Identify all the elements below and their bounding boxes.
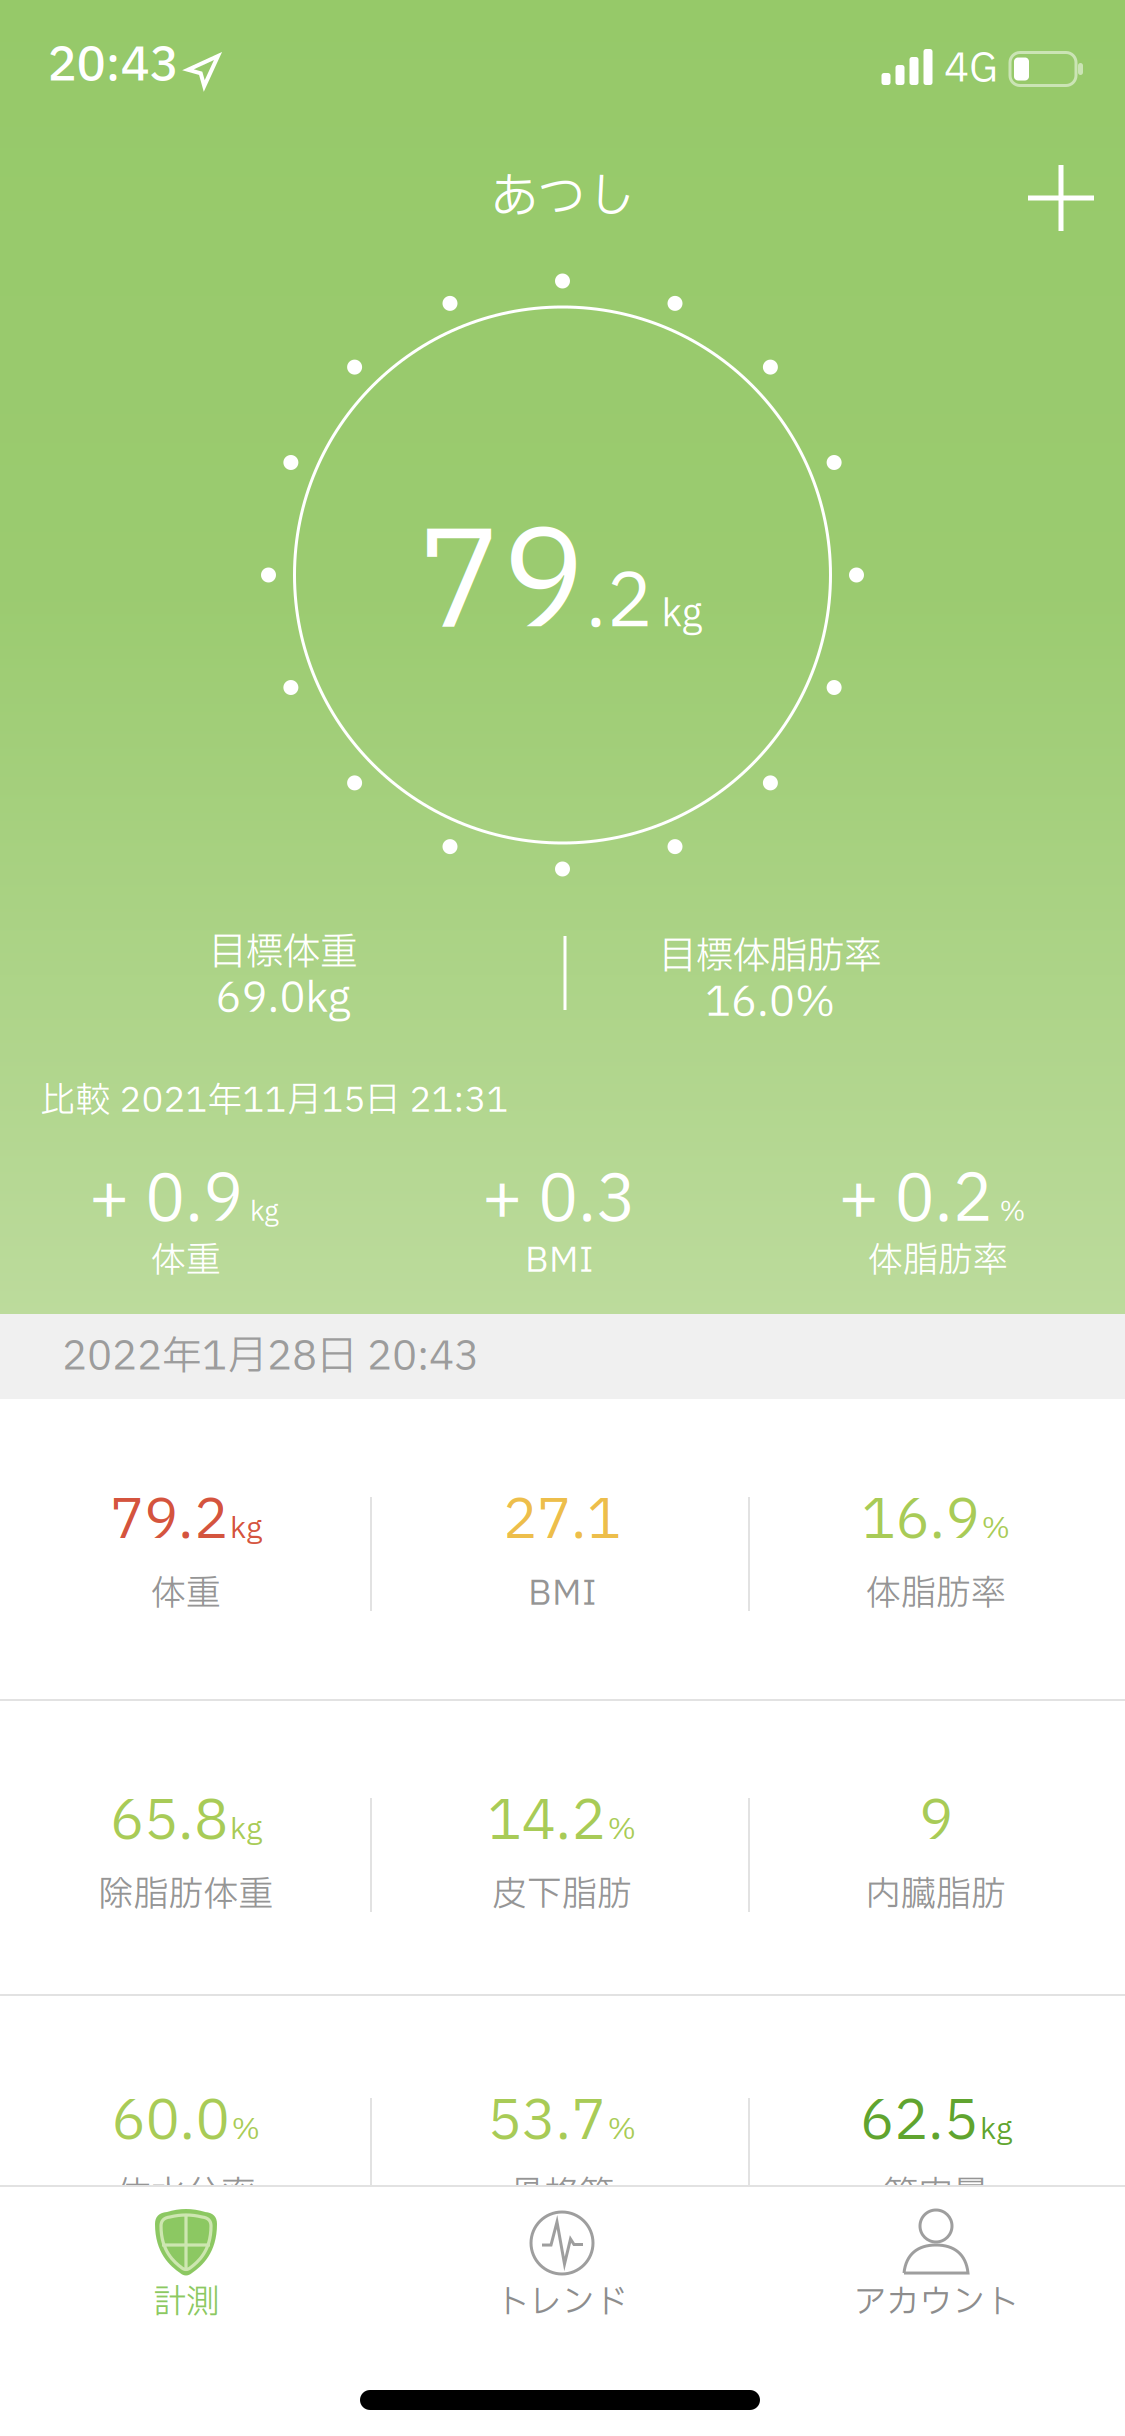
staticText: 皮下脂肪 — [492, 1869, 632, 1921]
staticText: + 0.9 — [89, 1153, 243, 1249]
staticText: 53.7 — [487, 2081, 605, 2163]
staticText: + 0.3 — [482, 1153, 636, 1249]
staticText: 内臓脂肪 — [866, 1869, 1006, 1921]
staticText: .2 — [585, 549, 652, 659]
staticText: % — [981, 1507, 1010, 1551]
button[interactable]: トレンド — [422, 2195, 702, 2335]
staticText: BMI — [525, 1235, 593, 1287]
button[interactable]: アカウント — [786, 2195, 1086, 2335]
staticText: 16.0% — [705, 972, 835, 1034]
staticText: 骨格筋 — [509, 2169, 614, 2221]
staticText: 79 — [417, 485, 585, 685]
staticText: % — [992, 1193, 1025, 1233]
staticText: 2022年1月28日 20:43 — [62, 1327, 479, 1387]
staticText: kg — [230, 1507, 262, 1551]
staticText: 79.2 — [110, 1480, 228, 1562]
staticText: アカウント — [853, 2278, 1018, 2328]
staticText: 20:43 — [47, 31, 178, 101]
staticText: % — [231, 2108, 260, 2152]
staticText: + 0.2 — [838, 1153, 992, 1249]
staticText: 体重 — [151, 1235, 221, 1287]
staticText: % — [607, 1808, 636, 1852]
staticText: 比較 2021年11月15日 21:31 — [40, 1075, 508, 1127]
button[interactable]: 計測 — [93, 2195, 279, 2335]
staticText: 体水分率 — [116, 2169, 256, 2221]
staticText: kg — [243, 1193, 279, 1233]
staticText: あつし — [490, 162, 634, 234]
staticText: BMI — [528, 1568, 596, 1620]
staticText: 除脂肪体重 — [98, 1869, 273, 1921]
staticText: 体脂肪率 — [866, 1568, 1006, 1620]
staticText: 4G — [944, 39, 998, 99]
staticText: 65.8 — [110, 1781, 228, 1863]
staticText: 計測 — [153, 2278, 219, 2328]
staticText: 14.2 — [487, 1781, 605, 1863]
staticText: 体脂肪率 — [868, 1235, 1008, 1287]
staticText: 目標体重 — [209, 925, 357, 981]
staticText: トレンド — [496, 2278, 628, 2328]
staticText: % — [607, 2108, 636, 2152]
staticText: 9 — [919, 1781, 953, 1863]
staticText: 16.9 — [861, 1480, 979, 1562]
staticText: 筋肉量 — [883, 2169, 988, 2221]
staticText: 27.1 — [503, 1480, 621, 1562]
staticText: kg — [652, 587, 702, 643]
staticText: 60.0 — [111, 2081, 229, 2163]
staticText: 62.5 — [860, 2081, 978, 2163]
staticText: 目標体脂肪率 — [659, 929, 881, 985]
button[interactable]: Add — [1016, 153, 1106, 243]
staticText: kg — [230, 1808, 262, 1852]
staticText: 69.0kg — [215, 968, 350, 1030]
staticText: kg — [980, 2108, 1012, 2152]
staticText: 体重 — [151, 1568, 221, 1620]
